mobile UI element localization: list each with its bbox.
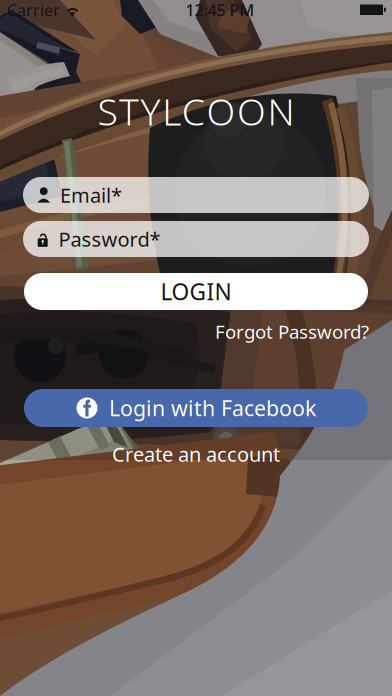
button[interactable]: LOGIN [24,273,368,310]
button[interactable]: Email* [23,177,369,213]
staticText: Email* [60,182,122,208]
staticText: STYLCOON [97,86,295,136]
staticText: 12:45 PM [185,0,254,21]
staticText: Login with Facebook [109,394,316,422]
button[interactable]: Login with Facebook [24,389,368,427]
button[interactable]: Password* [23,221,369,257]
staticText: Password* [58,226,160,252]
staticText: Forgot Password? [215,319,369,344]
button[interactable]: Forgot Password? [215,322,369,341]
staticText: LOGIN [160,276,231,306]
staticText: Create an account [112,441,280,467]
button[interactable]: Create an account [0,444,392,464]
staticText: Carrier [7,0,60,21]
